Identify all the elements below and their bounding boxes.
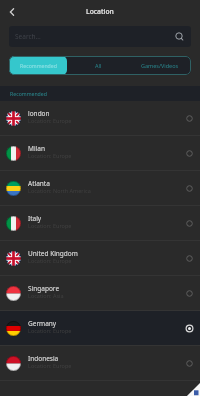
staticText: Games/Videos bbox=[141, 62, 179, 69]
staticText: Indonesia bbox=[28, 354, 59, 363]
staticText: Recommended bbox=[20, 62, 57, 69]
button[interactable]: Atlanta bbox=[0, 171, 200, 206]
button[interactable]: Milan bbox=[0, 136, 200, 171]
staticText: Location: Europe bbox=[28, 117, 72, 124]
button[interactable]: Search... bbox=[9, 26, 191, 47]
button[interactable]: Germany bbox=[0, 311, 200, 346]
staticText: All bbox=[95, 62, 102, 69]
button[interactable]: Back bbox=[4, 4, 19, 19]
staticText: Location bbox=[86, 7, 114, 16]
button[interactable]: Games/Videos bbox=[129, 56, 191, 75]
staticText: Search... bbox=[15, 32, 41, 41]
button[interactable]: Singapore bbox=[0, 276, 200, 311]
staticText: Location: Asia bbox=[28, 292, 64, 299]
button[interactable]: london bbox=[0, 101, 200, 136]
staticText: Germany bbox=[28, 319, 57, 328]
staticText: Location: Europe bbox=[28, 327, 72, 334]
staticText: Milan bbox=[28, 144, 45, 153]
button[interactable]: Indonesia bbox=[0, 346, 200, 381]
staticText: United Kingdom bbox=[28, 249, 78, 258]
staticText: Location: Europe bbox=[28, 152, 72, 159]
staticText: Location: Europe bbox=[28, 257, 72, 264]
staticText: Atlanta bbox=[28, 179, 50, 188]
staticText: Location: Europe bbox=[28, 222, 72, 229]
staticText: london bbox=[28, 109, 50, 118]
button[interactable]: United Kingdom bbox=[0, 241, 200, 276]
button[interactable]: Recommended bbox=[9, 56, 67, 75]
staticText: Singapore bbox=[28, 284, 60, 293]
staticText: Location: Europe bbox=[28, 362, 72, 369]
staticText: Italy bbox=[28, 214, 42, 223]
button[interactable]: All bbox=[67, 56, 129, 75]
staticText: Recommended bbox=[10, 90, 47, 97]
staticText: Location: North America bbox=[28, 187, 91, 194]
button[interactable]: Italy bbox=[0, 206, 200, 241]
